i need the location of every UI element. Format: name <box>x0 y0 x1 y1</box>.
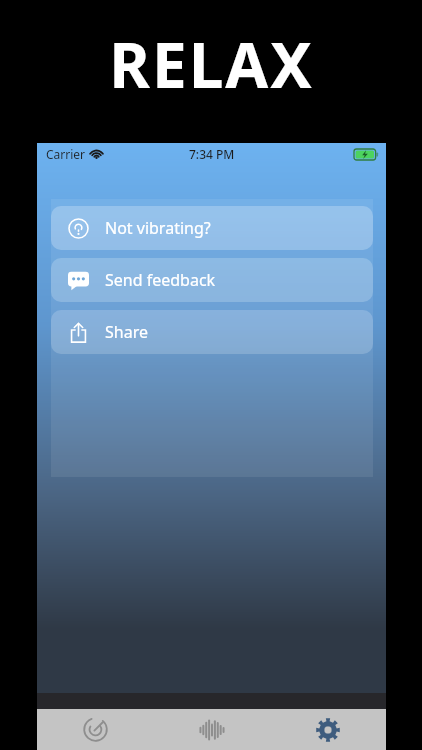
button[interactable]: Patterns <box>154 709 270 750</box>
staticText: Carrier <box>46 146 86 162</box>
staticText: Send feedback <box>105 269 216 291</box>
button[interactable]: Share <box>51 310 373 354</box>
button[interactable]: Not vibrating? <box>51 206 373 250</box>
staticText: 7:34 PM <box>189 146 235 162</box>
button[interactable]: Settings <box>270 709 386 750</box>
staticText: RELAX <box>109 22 314 106</box>
staticText: Share <box>105 321 148 343</box>
button[interactable]: Send feedback <box>51 258 373 302</box>
button[interactable]: Timer <box>37 709 154 750</box>
staticText: Not vibrating? <box>105 217 211 239</box>
